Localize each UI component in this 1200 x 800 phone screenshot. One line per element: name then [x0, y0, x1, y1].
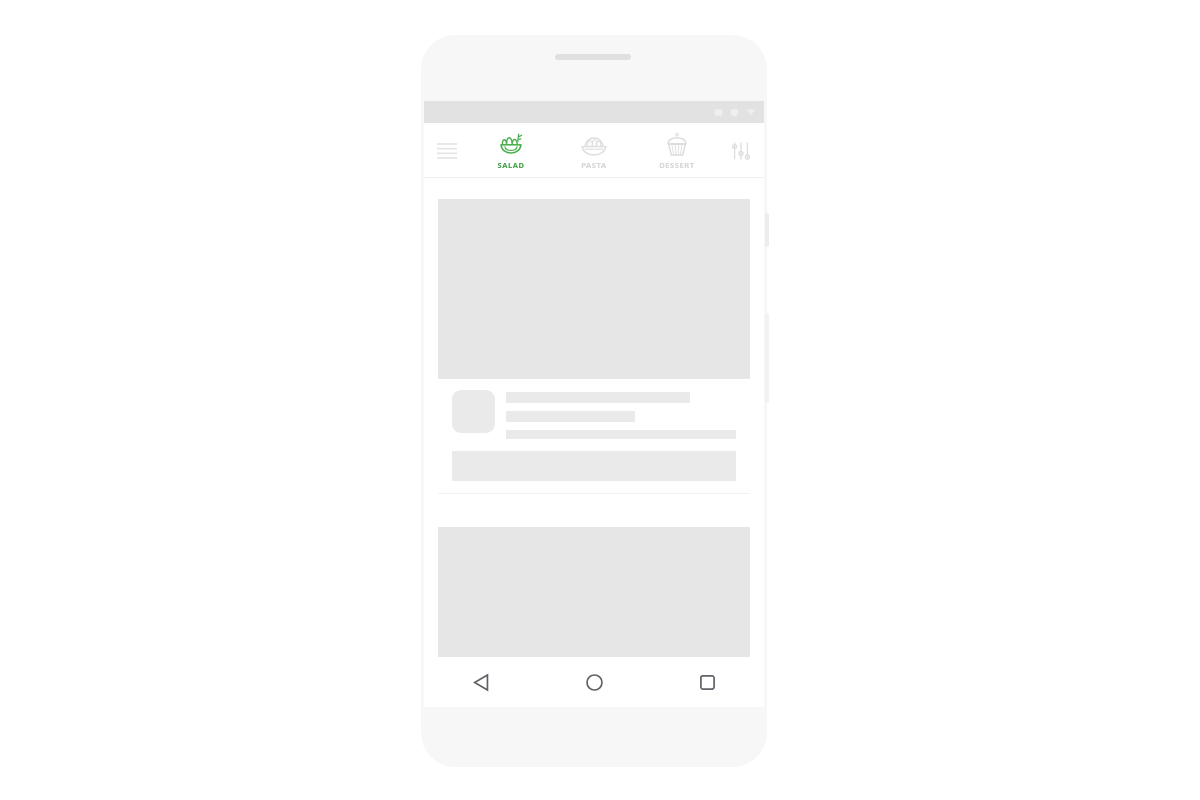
staticText: SALAD [497, 160, 525, 170]
button[interactable]: SALAD [470, 123, 552, 178]
staticText: DESSERT [659, 160, 695, 170]
button[interactable]: Recent apps [651, 657, 764, 707]
button[interactable]: DESSERT [635, 123, 718, 178]
button[interactable]: Back [424, 657, 538, 707]
button[interactable] [438, 199, 750, 494]
button[interactable]: Menu [424, 123, 470, 178]
staticText: PASTA [581, 160, 607, 170]
button[interactable]: Home [538, 657, 651, 707]
button[interactable]: Filter [718, 123, 764, 178]
button[interactable]: PASTA [552, 123, 635, 178]
